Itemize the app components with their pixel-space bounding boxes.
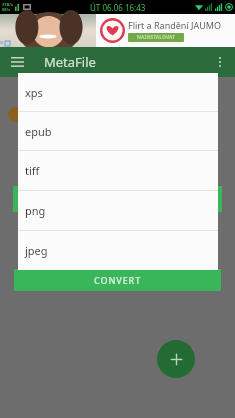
button[interactable]: xps bbox=[18, 73, 218, 111]
button[interactable]: More options bbox=[210, 52, 230, 72]
staticText: ÚT 06.06 16:43 bbox=[90, 2, 146, 13]
button[interactable] bbox=[13, 186, 222, 212]
button[interactable]: Add bbox=[157, 340, 195, 378]
staticText: 08/s bbox=[2, 7, 11, 12]
staticText: tiff bbox=[25, 163, 40, 178]
button[interactable]: tiff bbox=[18, 151, 218, 190]
button[interactable]: NAINSTALOVAT bbox=[137, 34, 175, 41]
button[interactable]: CONVERT bbox=[14, 269, 221, 291]
button[interactable]: epub bbox=[18, 112, 218, 150]
staticText: jpeg bbox=[25, 243, 48, 258]
staticText: MetaFile bbox=[44, 53, 96, 71]
button[interactable]: Open navigation drawer bbox=[7, 52, 27, 72]
staticText: epub bbox=[25, 124, 52, 139]
staticText: NAINSTALOVAT bbox=[137, 34, 175, 41]
staticText: 31B/s bbox=[2, 2, 13, 7]
staticText: png bbox=[25, 203, 46, 218]
button[interactable]: png bbox=[18, 191, 218, 230]
button[interactable]: jpeg bbox=[18, 231, 218, 270]
staticText: Flirt a Randění JAUMO bbox=[128, 19, 222, 31]
staticText: xps bbox=[25, 85, 43, 100]
button[interactable]: Flirt a Randění JAUMO bbox=[96, 14, 235, 47]
staticText: CONVERT bbox=[94, 274, 142, 286]
staticText: x bbox=[0, 38, 4, 46]
